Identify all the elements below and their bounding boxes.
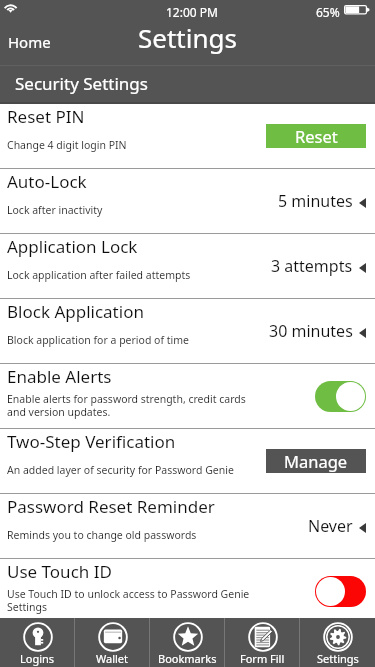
staticText: Reminds you to change old passwords: [7, 528, 197, 542]
button[interactable]: Home: [0, 20, 63, 63]
button[interactable]: 3 attempts: [265, 255, 375, 277]
staticText: Manage: [284, 450, 348, 472]
button[interactable]: 30 minutes: [263, 320, 375, 342]
button[interactable]: Password Reset Reminder: [0, 494, 375, 558]
staticText: 5 minutes: [278, 190, 353, 212]
staticText: Enable Alerts: [7, 365, 112, 388]
staticText: Form Fill: [240, 651, 285, 666]
staticText: Reset: [295, 125, 338, 147]
staticText: Password Reset Reminder: [7, 495, 215, 518]
button[interactable]: 5 minutes: [272, 190, 375, 212]
button[interactable]: Enable Alerts: [0, 364, 375, 428]
staticText: 30 minutes: [269, 320, 353, 342]
staticText: Use Touch ID: [7, 560, 112, 583]
staticText: Wallet: [96, 651, 129, 666]
staticText: Enable alerts for password strength, cre…: [7, 392, 246, 419]
staticText: Settings: [317, 651, 359, 666]
staticText: 12:00 PM: [166, 4, 218, 20]
button[interactable]: Wallet: [75, 618, 150, 667]
staticText: Security Settings: [15, 72, 148, 95]
staticText: Application Lock: [7, 235, 138, 258]
staticText: Never: [308, 515, 353, 537]
staticText: Reset PIN: [7, 105, 85, 128]
button[interactable]: Use Touch ID: [0, 559, 375, 623]
button[interactable]: Reset PIN: [0, 104, 375, 168]
button[interactable]: Logins: [0, 618, 75, 667]
staticText: 3 attempts: [271, 255, 353, 277]
button[interactable]: Block Application: [0, 299, 375, 363]
staticText: Use Touch ID to unlock access to Passwor…: [7, 587, 250, 614]
staticText: Block application for a period of time: [7, 333, 190, 347]
button[interactable]: Manage: [266, 449, 366, 473]
button[interactable]: Two-Step Verification: [0, 429, 375, 493]
button[interactable]: Switch off: [315, 576, 366, 607]
button[interactable]: Form Fill: [225, 618, 300, 667]
staticText: Two-Step Verification: [7, 430, 176, 453]
button[interactable]: Application Lock: [0, 234, 375, 298]
button[interactable]: Never: [302, 515, 375, 537]
staticText: Settings: [138, 20, 237, 55]
staticText: Bookmarks: [158, 651, 217, 666]
staticText: Auto-Lock: [7, 170, 87, 193]
staticText: Home: [8, 32, 51, 52]
button[interactable]: Auto-Lock: [0, 169, 375, 233]
button[interactable]: Switch on: [315, 381, 366, 412]
staticText: Logins: [20, 651, 55, 666]
staticText: Change 4 digit login PIN: [7, 138, 127, 152]
staticText: 65%: [316, 4, 340, 20]
button[interactable]: Reset: [266, 124, 366, 148]
staticText: Lock application after failed attempts: [7, 268, 191, 282]
staticText: Block Application: [7, 300, 144, 323]
button[interactable]: Bookmarks: [150, 618, 225, 667]
button[interactable]: Settings: [300, 618, 375, 667]
staticText: Lock after inactivity: [7, 203, 103, 217]
staticText: An added layer of security for Password …: [7, 463, 234, 477]
